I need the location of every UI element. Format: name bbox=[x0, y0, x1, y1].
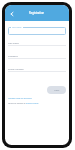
button[interactable]: Back bbox=[7, 9, 16, 18]
staticText: Company bbox=[8, 55, 18, 58]
button[interactable]: First name bbox=[8, 27, 66, 35]
button[interactable]: Phone Number bbox=[8, 67, 66, 72]
staticText: Phone Number bbox=[8, 68, 24, 71]
staticText: Registration bbox=[29, 11, 45, 15]
button[interactable]: NEXT bbox=[47, 86, 66, 94]
button[interactable]: Company bbox=[8, 54, 66, 59]
button[interactable]: Last name bbox=[8, 41, 66, 46]
staticText: NEXT bbox=[54, 89, 60, 92]
button[interactable]: Privacy Policy bbox=[26, 102, 39, 105]
button[interactable]: Already have an account? bbox=[8, 97, 32, 100]
staticText: Terms of Service & bbox=[8, 102, 26, 105]
staticText: Last name bbox=[8, 42, 19, 45]
staticText: First name bbox=[12, 26, 22, 29]
